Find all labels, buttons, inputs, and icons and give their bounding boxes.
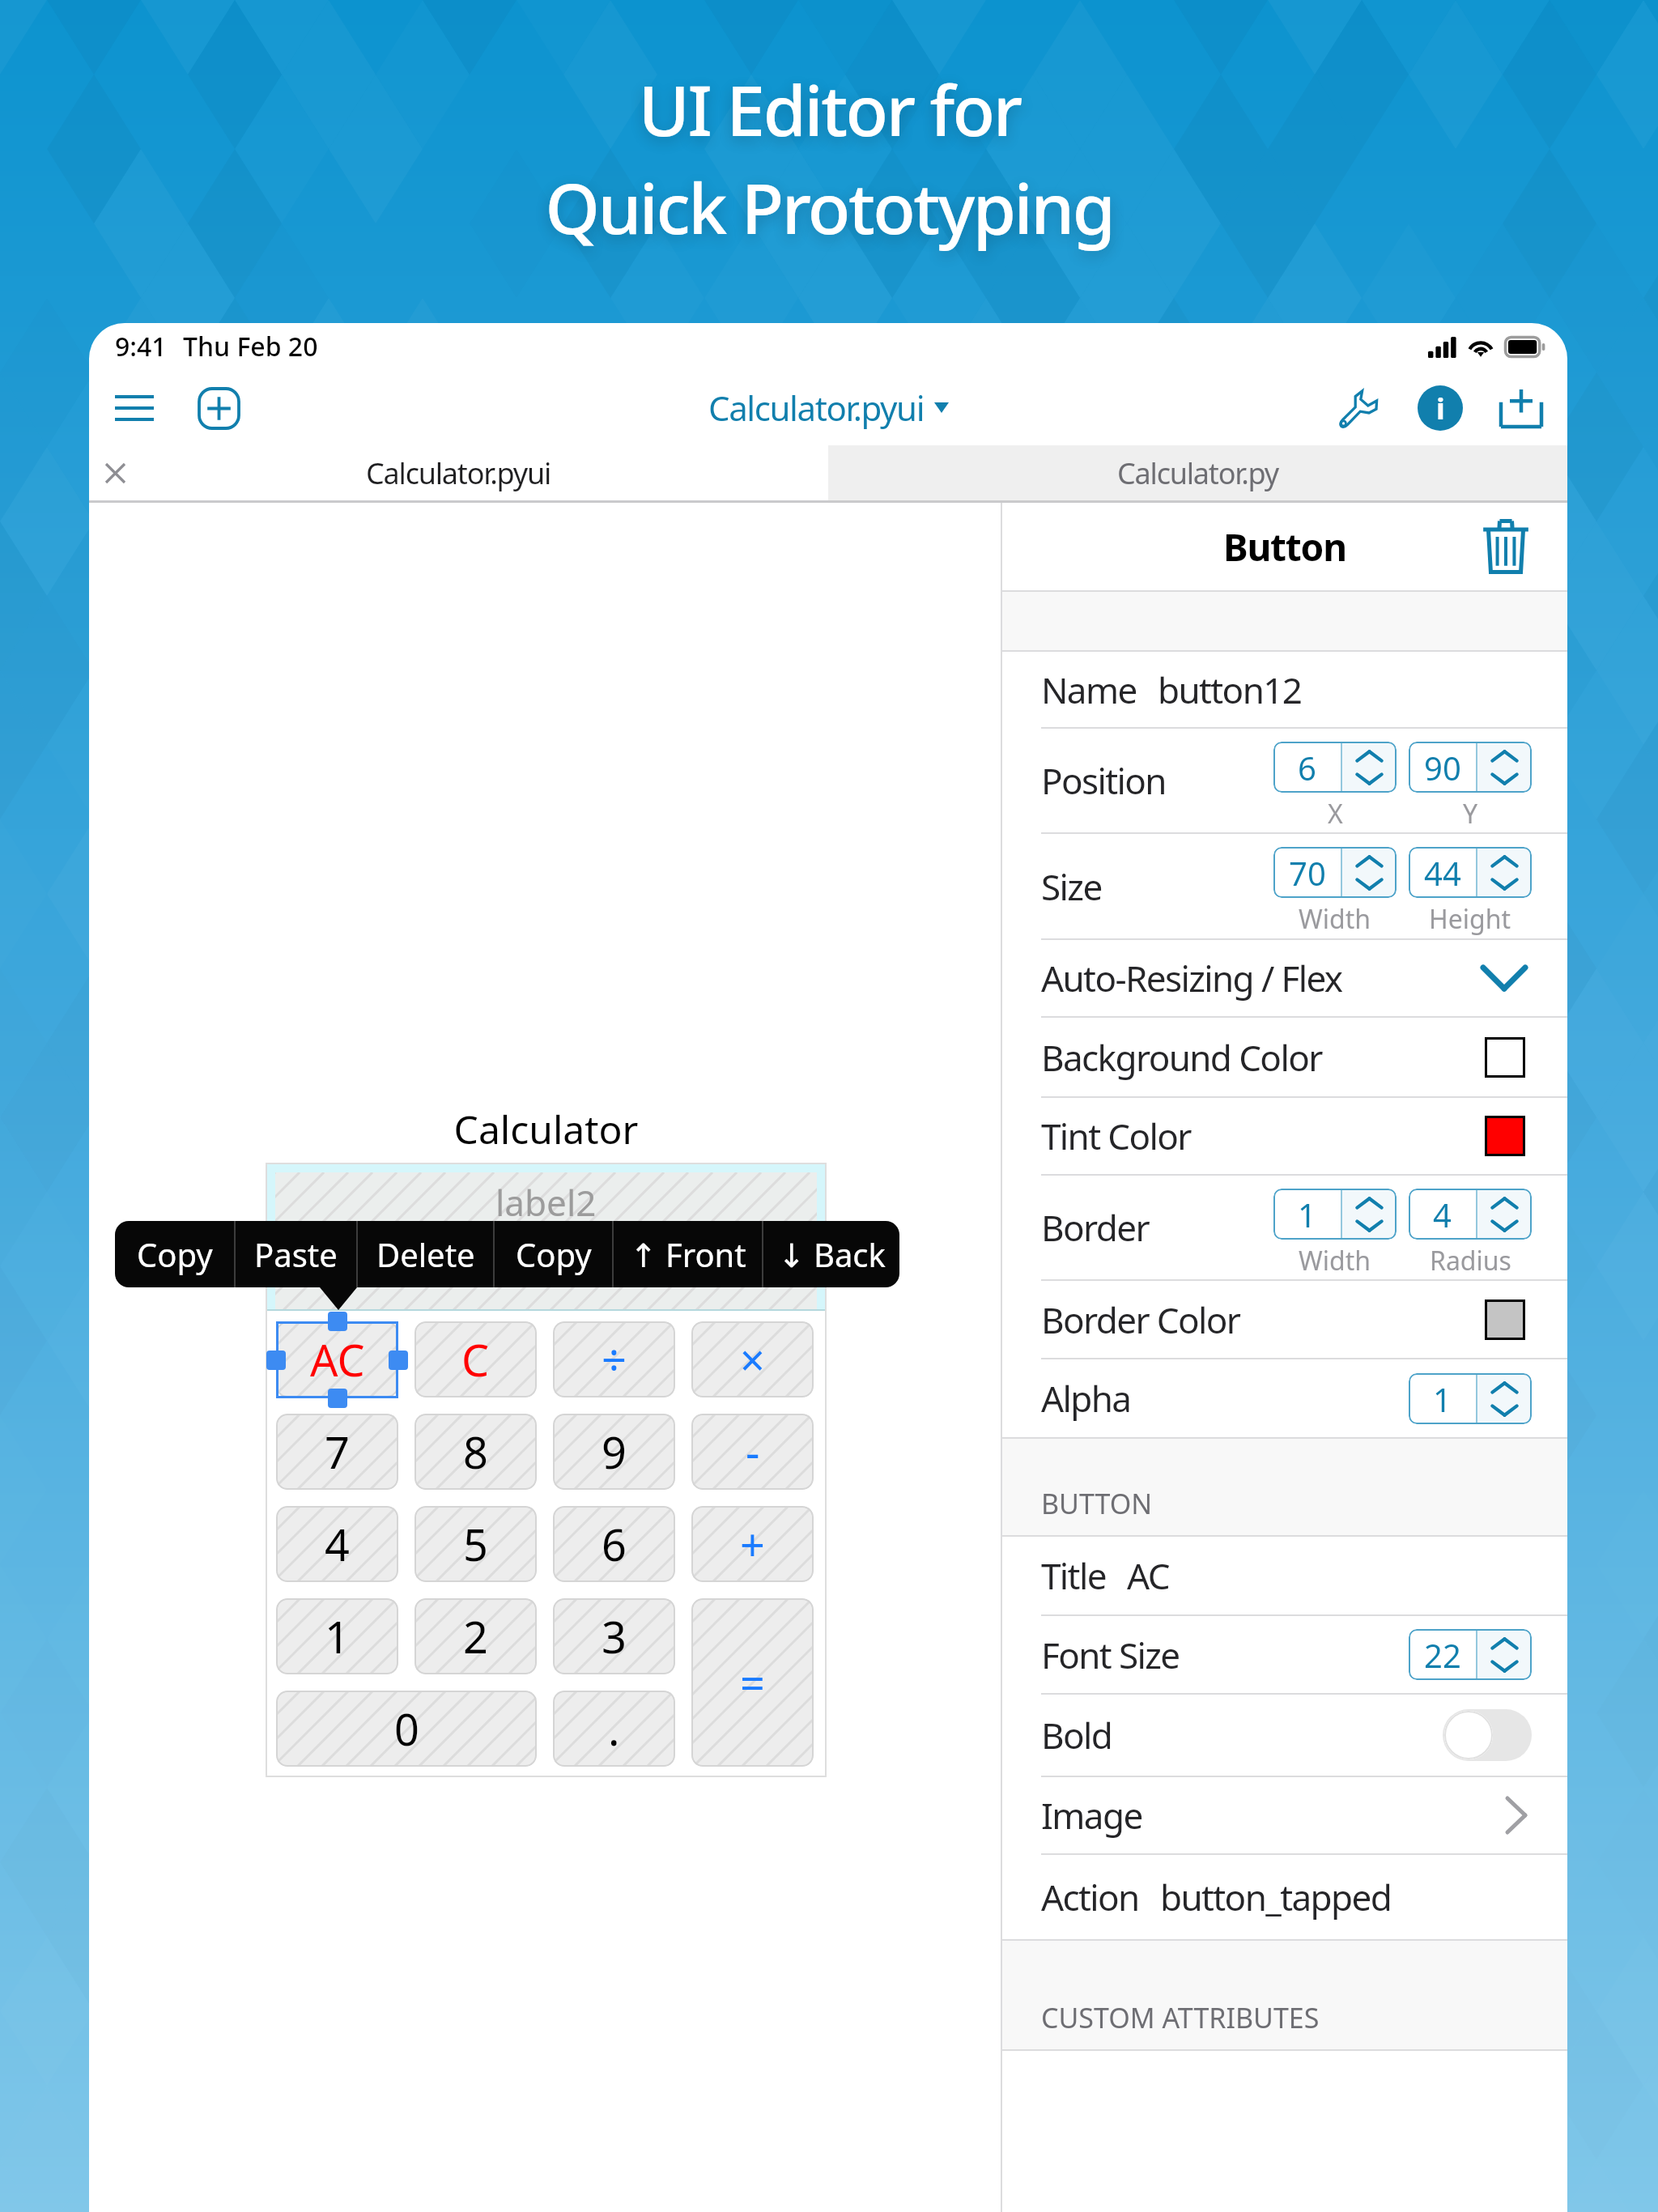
staticText: Title (1041, 1551, 1106, 1600)
button[interactable]: Title (1002, 1537, 1567, 1614)
button[interactable]: 1 (276, 1598, 398, 1674)
staticText: Quick Prototyping (545, 160, 1114, 254)
staticText: Tint Color (1041, 1112, 1191, 1160)
staticText: button12 (1158, 666, 1302, 714)
staticText: 4 (1433, 1193, 1452, 1236)
staticText: Background Color (1041, 1033, 1322, 1082)
button[interactable]: × (691, 1321, 814, 1397)
button[interactable]: Calculator.py (828, 445, 1567, 500)
button[interactable]: Delete (1477, 517, 1535, 576)
staticText: ÷ (602, 1329, 627, 1389)
staticText: Radius (1430, 1243, 1511, 1278)
button[interactable]: Resize left (266, 1351, 286, 1370)
button[interactable]: ↓ Back (763, 1221, 899, 1287)
staticText: Copy (516, 1232, 592, 1276)
button[interactable]: Bold (1002, 1695, 1567, 1776)
staticText: label2 (495, 1178, 597, 1227)
button[interactable]: = (691, 1598, 814, 1767)
button[interactable]: Copy (115, 1221, 234, 1287)
button[interactable]: ÷ (553, 1321, 675, 1397)
button[interactable]: Name (1002, 652, 1567, 727)
staticText: 9 (602, 1422, 627, 1482)
staticText: 70 (1289, 851, 1326, 895)
button[interactable]: 4 (276, 1506, 398, 1582)
button[interactable]: Position (1002, 729, 1567, 832)
button[interactable]: Auto-Resizing / Flex (1002, 940, 1567, 1016)
button[interactable]: Menu (104, 377, 165, 439)
staticText: Image (1041, 1791, 1142, 1840)
staticText: 1 (1433, 1377, 1452, 1421)
button[interactable]: 1 (1409, 1373, 1532, 1424)
button[interactable]: Resize top (328, 1312, 347, 1331)
button[interactable]: 5 (414, 1506, 537, 1582)
button[interactable]: 6 (553, 1506, 675, 1582)
staticText: Calculator.py (1117, 453, 1278, 493)
button[interactable]: 4 (1409, 1189, 1532, 1240)
staticText: Copy (137, 1232, 213, 1276)
button[interactable]: 6 (1273, 742, 1397, 793)
button[interactable]: Tools (1324, 373, 1394, 443)
button[interactable]: 7 (276, 1414, 398, 1490)
button[interactable]: ↑ Front (614, 1221, 762, 1287)
staticText: Y (1463, 796, 1478, 832)
staticText: 3 (602, 1606, 627, 1666)
staticText: 0 (394, 1699, 419, 1759)
button[interactable]: 70 (1273, 847, 1397, 898)
staticText: X (1328, 796, 1343, 832)
button[interactable]: Info (1405, 373, 1475, 443)
button[interactable]: 44 (1409, 847, 1532, 898)
staticText: 2 (463, 1606, 488, 1666)
button[interactable]: - (691, 1414, 814, 1490)
button[interactable]: 3 (553, 1598, 675, 1674)
button[interactable]: Image (1002, 1777, 1567, 1853)
staticText: Calculator (266, 1103, 827, 1155)
staticText: Height (1429, 901, 1511, 937)
button[interactable]: Size (1002, 834, 1567, 938)
button[interactable]: AC (276, 1321, 398, 1397)
button[interactable]: Background Color (1002, 1018, 1567, 1096)
button[interactable]: Paste (236, 1221, 356, 1287)
staticText: + (740, 1514, 765, 1574)
button[interactable]: 90 (1409, 742, 1532, 793)
button[interactable]: Alpha (1002, 1359, 1567, 1437)
staticText: Calculator.pyui (366, 453, 551, 493)
staticText: ↓ Back (778, 1232, 886, 1276)
button[interactable]: + (691, 1506, 814, 1582)
button[interactable]: . (553, 1691, 675, 1767)
button[interactable]: Font Size (1002, 1616, 1567, 1693)
staticText: AC (310, 1329, 365, 1389)
staticText: Font Size (1041, 1631, 1180, 1679)
staticText: 9:41 (115, 329, 167, 364)
button[interactable]: 0 (276, 1691, 537, 1767)
staticText: 1 (1298, 1193, 1316, 1236)
staticText: i (1436, 389, 1445, 428)
staticText: Paste (254, 1232, 338, 1276)
button[interactable]: 9 (553, 1414, 675, 1490)
button[interactable]: Action (1002, 1855, 1567, 1939)
staticText: Button (1223, 521, 1346, 572)
button[interactable]: 2 (414, 1598, 537, 1674)
button[interactable]: Resize right (389, 1351, 408, 1370)
staticText: Border (1041, 1203, 1149, 1252)
staticText: 44 (1424, 851, 1461, 895)
button[interactable]: Tint Color (1002, 1098, 1567, 1174)
staticText: 1 (325, 1606, 350, 1666)
staticText: . (608, 1699, 620, 1759)
button[interactable]: Calculator.pyui (708, 385, 949, 431)
staticText: Thu Feb 20 (183, 329, 318, 364)
button[interactable]: Add (188, 377, 249, 439)
button[interactable]: Copy (495, 1221, 612, 1287)
button[interactable]: Border Color (1002, 1281, 1567, 1358)
button[interactable]: Close tab (92, 450, 138, 496)
button[interactable]: 22 (1409, 1629, 1532, 1680)
staticText: Width (1299, 1243, 1371, 1278)
button[interactable]: 8 (414, 1414, 537, 1490)
button[interactable]: Border (1002, 1176, 1567, 1279)
button[interactable]: C (414, 1321, 537, 1397)
button[interactable]: Insert (1486, 373, 1556, 443)
staticText: Action (1041, 1873, 1139, 1921)
button[interactable]: 1 (1273, 1189, 1397, 1240)
button[interactable]: Resize bottom (328, 1389, 347, 1408)
button[interactable]: Delete (358, 1221, 493, 1287)
button[interactable]: Calculator.pyui (89, 445, 828, 500)
